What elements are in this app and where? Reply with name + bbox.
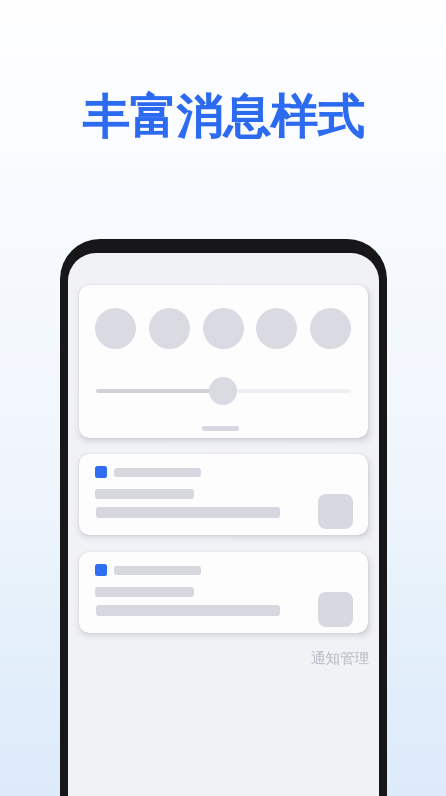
button[interactable]: Quick setting toggle bbox=[256, 308, 297, 349]
button[interactable]: Quick setting toggle bbox=[149, 308, 190, 349]
button[interactable] bbox=[79, 454, 368, 535]
button[interactable]: Quick setting toggle bbox=[95, 308, 136, 349]
button[interactable]: 通知管理 bbox=[311, 649, 369, 667]
button[interactable]: Brightness slider bbox=[209, 377, 237, 405]
staticText: 丰富消息样式 bbox=[0, 88, 446, 147]
button[interactable]: Quick setting toggle bbox=[79, 285, 368, 438]
button[interactable] bbox=[79, 552, 368, 633]
button[interactable]: Quick setting toggle bbox=[203, 308, 244, 349]
button[interactable]: Quick setting toggle bbox=[310, 308, 351, 349]
